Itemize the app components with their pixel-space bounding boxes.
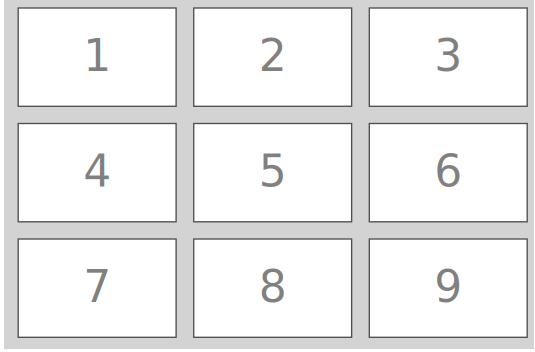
staticText: 4 bbox=[83, 145, 111, 197]
button[interactable]: 1 bbox=[18, 8, 176, 106]
button[interactable]: 8 bbox=[194, 239, 352, 337]
button[interactable]: 2 bbox=[194, 8, 352, 106]
staticText: 6 bbox=[434, 145, 462, 197]
button[interactable]: 5 bbox=[194, 123, 352, 222]
button[interactable]: 9 bbox=[369, 239, 527, 337]
button[interactable]: 7 bbox=[18, 239, 176, 337]
button[interactable]: 3 bbox=[369, 8, 527, 106]
staticText: 9 bbox=[434, 261, 462, 312]
button[interactable]: 6 bbox=[369, 123, 527, 222]
staticText: 1 bbox=[83, 30, 111, 81]
staticText: 5 bbox=[259, 145, 287, 197]
staticText: 2 bbox=[259, 30, 287, 81]
staticText: 7 bbox=[83, 261, 111, 312]
staticText: 8 bbox=[259, 261, 287, 312]
staticText: 3 bbox=[434, 30, 462, 81]
button[interactable]: 4 bbox=[18, 123, 176, 222]
